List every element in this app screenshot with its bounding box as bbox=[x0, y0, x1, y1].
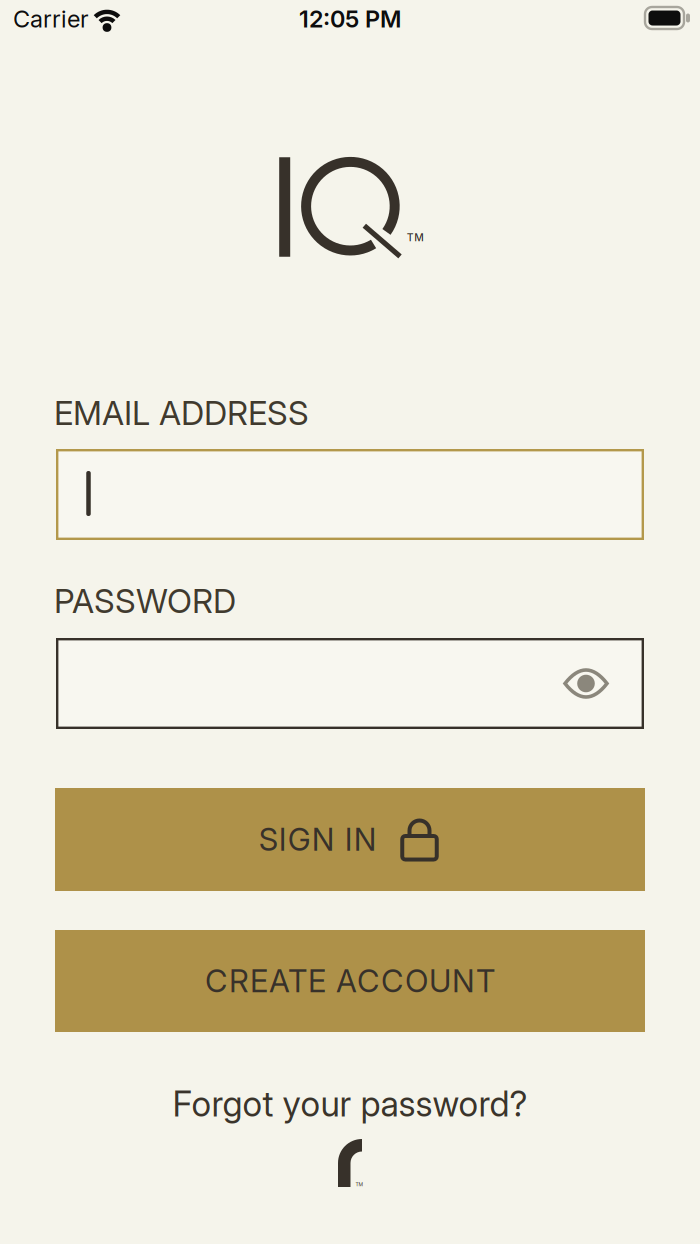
button[interactable]: CREATE ACCOUNT bbox=[55, 930, 645, 1032]
staticText: 12:05 PM bbox=[299, 5, 401, 33]
button[interactable]: Password bbox=[56, 638, 644, 729]
button[interactable]: Email address bbox=[56, 449, 644, 540]
staticText: Carrier bbox=[13, 5, 89, 33]
staticText: CREATE ACCOUNT bbox=[205, 963, 495, 999]
button[interactable]: Forgot your password? bbox=[172, 1084, 527, 1124]
staticText: PASSWORD bbox=[54, 581, 236, 620]
button[interactable]: SIGN IN bbox=[55, 788, 645, 891]
staticText: SIGN IN bbox=[259, 821, 377, 858]
staticText: EMAIL ADDRESS bbox=[54, 393, 309, 432]
staticText: TM bbox=[355, 1182, 363, 1187]
button[interactable]: Show password bbox=[561, 665, 611, 701]
staticText: TM bbox=[407, 231, 424, 244]
staticText: Forgot your password? bbox=[172, 1084, 527, 1124]
